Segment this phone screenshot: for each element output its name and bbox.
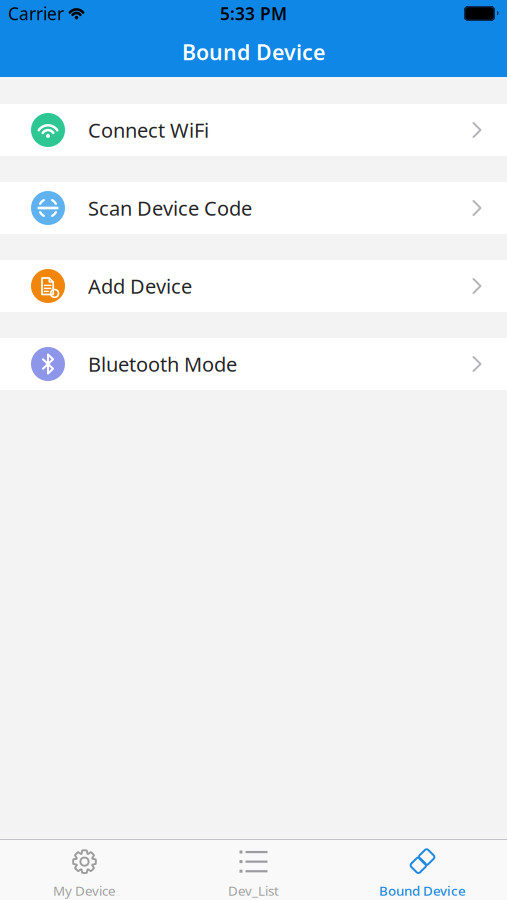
staticText: 5:33 PM: [220, 2, 287, 25]
staticText: Connect WiFi: [88, 117, 209, 143]
staticText: Bound Device: [379, 882, 466, 899]
button[interactable]: Scan Device Code: [0, 182, 507, 234]
staticText: Dev_List: [228, 882, 279, 899]
button[interactable]: Connect WiFi: [0, 104, 507, 156]
staticText: Bluetooth Mode: [88, 351, 237, 377]
button[interactable]: Dev_List: [169, 840, 338, 900]
staticText: Carrier: [8, 2, 64, 25]
staticText: Add Device: [88, 273, 192, 299]
staticText: Scan Device Code: [88, 195, 252, 221]
button[interactable]: Bound Device: [338, 840, 507, 900]
staticText: Bound Device: [182, 38, 325, 66]
button[interactable]: Bluetooth Mode: [0, 338, 507, 390]
button[interactable]: My Device: [0, 840, 169, 900]
button[interactable]: Add Device: [0, 260, 507, 312]
staticText: My Device: [53, 882, 116, 899]
